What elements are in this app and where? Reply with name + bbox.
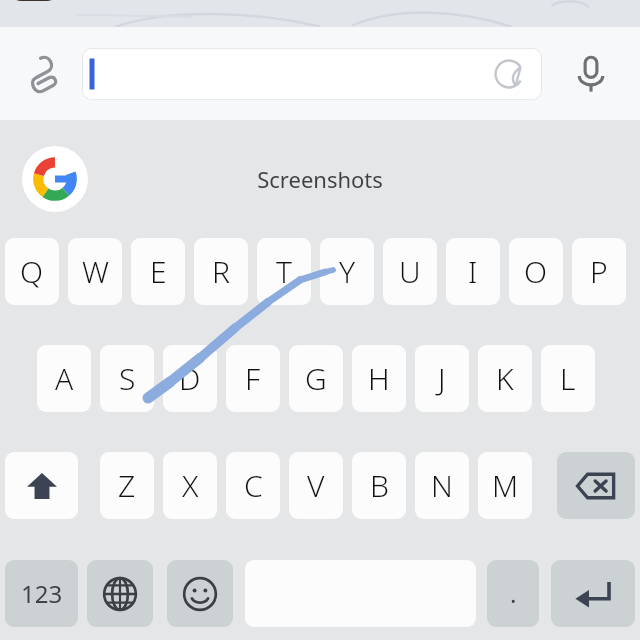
staticText: H [368,358,390,399]
button[interactable]: E [131,238,185,305]
button[interactable]: A [37,345,91,412]
button[interactable]: V [289,452,343,519]
staticText: N [431,465,453,506]
staticText: J [438,358,446,399]
button[interactable]: G [289,345,343,412]
button[interactable]: Y [320,238,374,305]
button[interactable]: I [446,238,500,305]
staticText: Z [118,465,136,506]
staticText: U [399,251,421,292]
button[interactable]: Backspace [557,452,635,519]
staticText: R [212,251,230,292]
staticText: M [492,465,519,506]
button[interactable]: Voice message [542,27,640,120]
staticText: P [590,251,608,292]
staticText: S [119,358,136,399]
button[interactable]: . [487,560,539,627]
staticText: B [370,465,389,506]
staticText: F [245,358,261,399]
button[interactable]: 123 [5,560,78,627]
staticText: L [560,358,576,399]
button[interactable]: J [415,345,469,412]
button[interactable]: C [226,452,280,519]
button[interactable]: Stickers [82,48,542,100]
staticText: K [496,358,514,399]
button[interactable]: B [352,452,406,519]
button[interactable]: Z [100,452,154,519]
button[interactable]: F [226,345,280,412]
button[interactable]: H [352,345,406,412]
staticText: . [510,577,517,610]
button[interactable]: P [572,238,626,305]
button[interactable]: S [100,345,154,412]
button[interactable]: Stickers [488,53,530,95]
button[interactable]: X [163,452,217,519]
button[interactable]: U [383,238,437,305]
staticText: Screenshots [257,164,383,194]
button[interactable]: Enter [551,560,635,627]
button[interactable]: D [163,345,217,412]
staticText: I [468,251,478,292]
staticText: G [305,358,327,399]
button[interactable]: Attach file [0,27,82,120]
button[interactable]: M [478,452,532,519]
staticText: T [276,251,292,292]
staticText: X [182,465,199,506]
button[interactable]: Change language [87,560,153,627]
staticText: W [82,251,109,292]
button[interactable]: N [415,452,469,519]
button[interactable]: Shift [5,452,78,519]
button[interactable]: R [194,238,248,305]
staticText: D [179,358,201,399]
staticText: A [55,358,74,399]
button[interactable]: L [541,345,595,412]
staticText: O [524,251,548,292]
button[interactable]: T [257,238,311,305]
button[interactable]: K [478,345,532,412]
button[interactable]: Screenshots [257,164,383,194]
button[interactable]: Google [22,146,88,212]
button[interactable]: W [68,238,122,305]
staticText: 123 [21,577,63,610]
button[interactable]: O [509,238,563,305]
staticText: E [150,251,167,292]
staticText: V [307,465,325,506]
staticText: C [244,465,263,506]
button[interactable]: Emoji [167,560,233,627]
staticText: Q [20,251,44,292]
staticText: Y [339,251,356,292]
button[interactable]: Q [5,238,59,305]
